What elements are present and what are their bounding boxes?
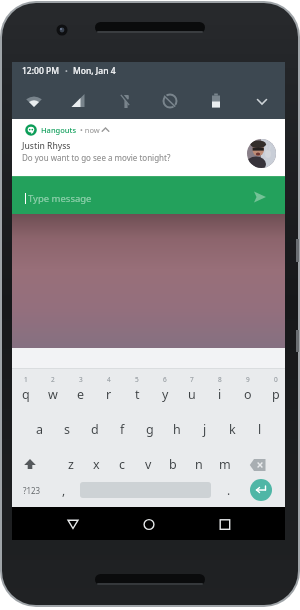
button[interactable]: Hangouts [12, 119, 285, 176]
staticText: 0 [274, 375, 278, 384]
staticText: t [135, 386, 140, 403]
staticText: a [36, 421, 44, 438]
button[interactable] [217, 517, 233, 533]
button[interactable] [65, 517, 81, 533]
staticText: n [195, 456, 203, 473]
staticText: 6 [163, 375, 167, 384]
staticText: , [62, 482, 66, 498]
staticText: 7 [190, 375, 194, 384]
staticText: h [173, 421, 181, 438]
staticText: i [218, 386, 222, 403]
button[interactable] [22, 457, 38, 473]
staticText: j [203, 421, 207, 438]
staticText: f [120, 421, 125, 438]
staticText: 5 [135, 375, 139, 384]
staticText: Do you want to go see a movie tonight? [22, 152, 171, 163]
staticText: z [68, 456, 74, 473]
staticText: u [188, 386, 196, 403]
staticText: s [64, 421, 70, 438]
staticText: q [22, 386, 30, 403]
staticText: d [91, 421, 99, 438]
staticText: ?123 [23, 485, 41, 496]
staticText: Type message [28, 192, 92, 205]
button[interactable] [141, 517, 157, 533]
staticText: Hangouts [41, 125, 77, 135]
staticText: p [272, 386, 280, 403]
button[interactable] [250, 479, 272, 501]
staticText: r [106, 386, 112, 403]
staticText: l [258, 421, 262, 438]
staticText: 4 [107, 375, 111, 384]
staticText: v [145, 456, 152, 473]
staticText: k [229, 421, 236, 438]
staticText: x [93, 456, 100, 473]
staticText: Mon, Jan 4 [73, 65, 116, 77]
staticText: 9 [246, 375, 250, 384]
staticText: y [162, 386, 169, 403]
staticText: w [48, 386, 58, 403]
staticText: e [77, 386, 85, 403]
staticText: 1 [24, 375, 28, 384]
staticText: o [244, 386, 252, 403]
staticText: . [227, 482, 231, 498]
staticText: Justin Rhyss [22, 140, 71, 152]
staticText: m [219, 456, 231, 473]
staticText: 2 [51, 375, 55, 384]
staticText: c [119, 456, 126, 473]
button[interactable] [249, 458, 267, 472]
button[interactable]: Type message [12, 176, 285, 214]
staticText: • now [80, 125, 100, 135]
staticText: b [169, 456, 177, 473]
staticText: 8 [218, 375, 222, 384]
staticText: 12:00 PM [22, 65, 59, 77]
staticText: g [146, 421, 154, 438]
staticText: 3 [79, 375, 83, 384]
staticText: • [65, 66, 68, 76]
